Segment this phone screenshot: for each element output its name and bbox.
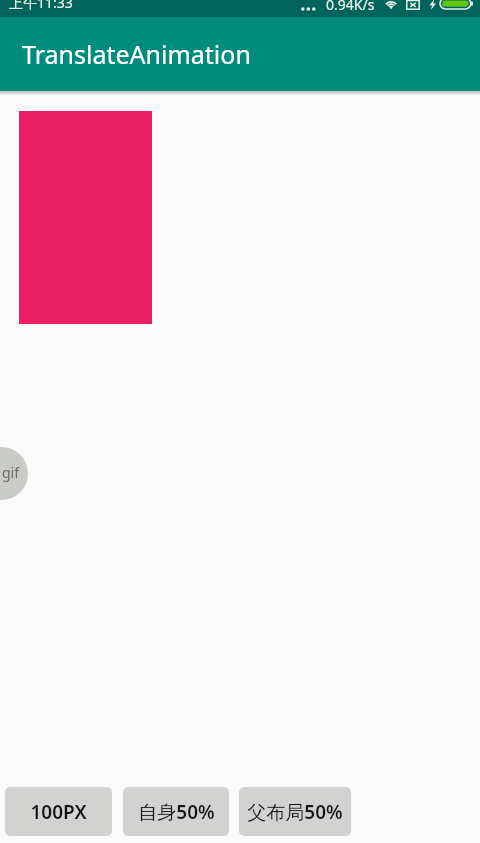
staticText: gif bbox=[2, 463, 20, 482]
staticText: 0.94K/s bbox=[326, 0, 375, 12]
button[interactable]: 自身50% bbox=[123, 787, 229, 836]
staticText: 上午11:33 bbox=[9, 0, 73, 10]
button[interactable]: 100PX bbox=[5, 787, 112, 836]
staticText: 100PX bbox=[30, 799, 87, 825]
button[interactable]: 父布局50% bbox=[239, 787, 351, 836]
staticText: 父布局50% bbox=[247, 799, 343, 825]
staticText: TranslateAnimation bbox=[22, 37, 251, 71]
staticText: 自身50% bbox=[138, 799, 215, 825]
